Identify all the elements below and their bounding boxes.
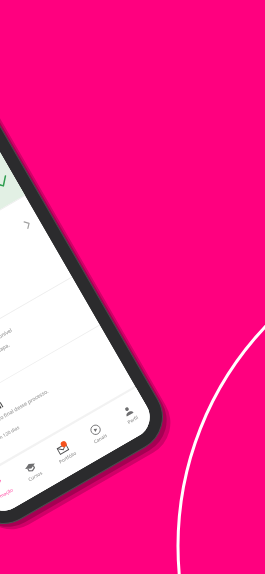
button[interactable]: Perfil xyxy=(108,390,154,430)
button[interactable]: Portfolio xyxy=(40,425,90,470)
button[interactable]: Feedback xyxy=(0,250,100,320)
button[interactable]: Canais xyxy=(75,405,123,447)
button[interactable]: Projeto Final xyxy=(0,330,130,385)
button[interactable]: Cursos xyxy=(0,440,55,490)
